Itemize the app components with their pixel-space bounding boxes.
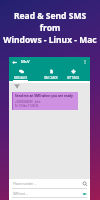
button[interactable]: Search contacts bbox=[82, 181, 88, 187]
staticText: Fri 10 Nov 11:08:36 bbox=[15, 104, 39, 108]
button[interactable]: MESSAGES bbox=[11, 66, 31, 80]
button[interactable]: SIM CARDS bbox=[41, 66, 61, 80]
staticText: SMS text ... bbox=[13, 192, 28, 196]
button[interactable]: Back bbox=[11, 59, 18, 66]
button[interactable]: More options bbox=[82, 59, 88, 65]
staticText: SIM CARDS bbox=[44, 76, 58, 80]
staticText: Read & Send SMS from Windows - Linux - M… bbox=[0, 10, 100, 46]
staticText: MESSAGES bbox=[14, 76, 28, 80]
staticText: MsV bbox=[21, 59, 30, 65]
button[interactable]: Send me an SMS when you are ready bbox=[12, 92, 78, 110]
staticText: SETTINGS bbox=[67, 76, 80, 80]
staticText: Send me an SMS when you are ready bbox=[15, 94, 73, 98]
button[interactable]: SETTINGS bbox=[63, 66, 83, 80]
staticText: Phone number ... bbox=[13, 182, 37, 186]
button[interactable]: Send bbox=[82, 191, 88, 197]
button[interactable]: Filter bbox=[13, 82, 21, 90]
staticText: +00000000000 John bbox=[15, 100, 41, 104]
